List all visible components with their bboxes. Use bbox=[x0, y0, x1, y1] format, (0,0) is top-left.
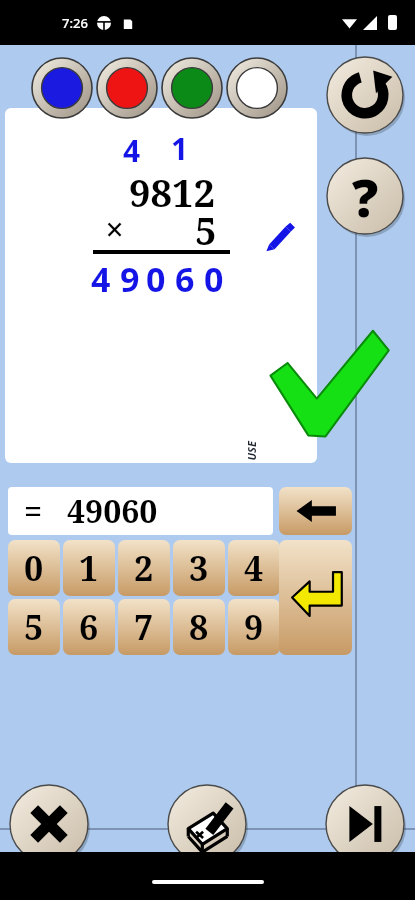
button[interactable]: 2 bbox=[118, 540, 170, 596]
staticText: 6 bbox=[175, 256, 204, 302]
button[interactable]: 6 bbox=[63, 599, 115, 655]
button[interactable]: Backspace bbox=[279, 487, 352, 535]
staticText: 3 bbox=[189, 545, 209, 591]
staticText: THE ANSWER... bbox=[317, 584, 332, 610]
button[interactable]: 0 bbox=[8, 540, 60, 596]
staticText: 6 bbox=[79, 604, 99, 650]
button[interactable]: Colour 1 bbox=[32, 58, 92, 118]
button[interactable]: 9 bbox=[228, 599, 280, 655]
button[interactable]: = 49060 bbox=[8, 487, 273, 535]
staticText: 9812 bbox=[129, 166, 215, 218]
button[interactable]: 5 bbox=[8, 599, 60, 655]
button[interactable]: Colour 4 bbox=[227, 58, 287, 118]
button[interactable]: 7 bbox=[118, 599, 170, 655]
staticText: 5 bbox=[24, 604, 44, 650]
button[interactable]: Close bbox=[10, 785, 88, 863]
staticText: 2 bbox=[134, 545, 154, 591]
button[interactable]: Colour 2 bbox=[97, 58, 157, 118]
button[interactable]: Draw bbox=[5, 108, 317, 463]
staticText: 0 bbox=[24, 545, 44, 591]
staticText: 7 bbox=[134, 604, 154, 650]
staticText: × bbox=[105, 206, 125, 252]
button[interactable]: Colour 3 bbox=[162, 58, 222, 118]
staticText: 1 bbox=[171, 128, 189, 169]
staticText: 1 bbox=[79, 545, 99, 591]
staticText: 9 bbox=[120, 256, 146, 302]
button[interactable]: 4 bbox=[228, 540, 280, 596]
staticText: 5 bbox=[195, 204, 217, 256]
button[interactable]: 1 bbox=[63, 540, 115, 596]
staticText: 4 bbox=[91, 256, 120, 302]
staticText: 9 bbox=[244, 604, 264, 650]
button[interactable]: Help bbox=[327, 158, 403, 234]
staticText: ? bbox=[352, 161, 379, 232]
button[interactable]: Notes bbox=[168, 785, 246, 863]
staticText: 4 bbox=[123, 130, 141, 171]
button[interactable]: 3 bbox=[173, 540, 225, 596]
staticText: 8 bbox=[189, 604, 209, 650]
other: Draw bbox=[263, 220, 297, 254]
button[interactable]: 8 bbox=[173, 599, 225, 655]
staticText: USE THE KEYBOARD TO WRITE AND VALIDATE bbox=[243, 434, 258, 460]
staticText: 0 bbox=[146, 256, 175, 302]
button[interactable]: Enter bbox=[279, 540, 352, 655]
button[interactable]: Refresh bbox=[327, 57, 403, 133]
button[interactable]: Next bbox=[326, 785, 404, 863]
staticText: 7:26 bbox=[62, 14, 88, 32]
staticText: = 49060 bbox=[24, 489, 158, 533]
staticText: 0 bbox=[204, 256, 233, 302]
staticText: 4 bbox=[244, 545, 264, 591]
